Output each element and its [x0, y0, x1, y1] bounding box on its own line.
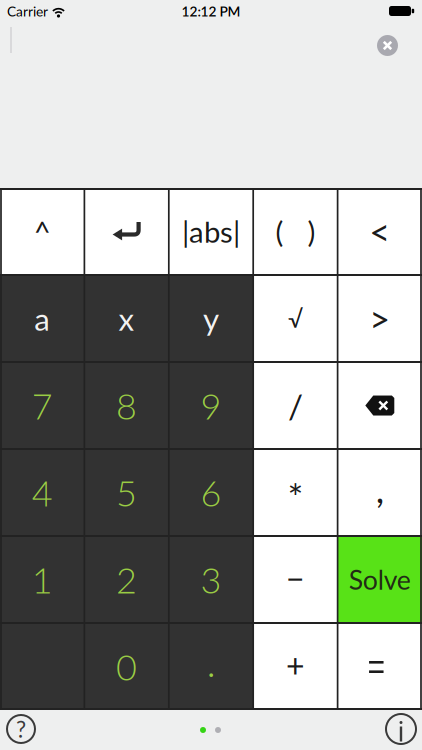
button[interactable]: /: [253, 362, 338, 449]
staticText: 7: [32, 384, 53, 427]
staticText: >: [369, 297, 390, 340]
staticText: ?: [16, 715, 26, 743]
staticText: 1: [32, 558, 53, 601]
button[interactable]: 2: [84, 536, 169, 623]
button[interactable]: y: [169, 275, 253, 362]
button[interactable]: <: [338, 188, 422, 275]
staticText: 12:12 PM: [181, 3, 240, 19]
staticText: √: [288, 304, 303, 333]
staticText: Carrier: [7, 3, 48, 19]
button[interactable]: x: [84, 275, 169, 362]
button[interactable]: √: [253, 275, 338, 362]
button[interactable]: [84, 188, 169, 275]
button[interactable]: 1: [0, 536, 84, 623]
button[interactable]: ^: [0, 188, 84, 275]
button[interactable]: (: [253, 188, 338, 275]
staticText: 8: [116, 384, 137, 427]
staticText: 9: [200, 384, 221, 427]
staticText: |abs|: [182, 214, 240, 249]
staticText: 3: [200, 558, 221, 601]
staticText: Solve: [349, 563, 411, 595]
button[interactable]: .: [169, 623, 253, 710]
staticText: 2: [116, 558, 137, 601]
staticText: ,: [376, 466, 384, 511]
button[interactable]: [377, 35, 398, 56]
button[interactable]: [338, 623, 422, 710]
staticText: *: [287, 474, 303, 519]
staticText: <: [369, 210, 390, 253]
staticText: 5: [116, 471, 137, 514]
staticText: .: [206, 637, 215, 685]
button[interactable]: *: [253, 449, 338, 536]
button[interactable]: ,: [338, 449, 422, 536]
staticText: −: [286, 559, 305, 597]
staticText: 0: [116, 645, 137, 688]
button[interactable]: 9: [169, 362, 253, 449]
button[interactable]: +: [253, 623, 338, 710]
staticText: ): [307, 214, 315, 249]
button[interactable]: |abs|: [169, 188, 253, 275]
button[interactable]: [386, 714, 416, 744]
button[interactable]: 7: [0, 362, 84, 449]
staticText: x: [119, 300, 135, 337]
button[interactable]: >: [338, 275, 422, 362]
staticText: +: [286, 646, 305, 684]
staticText: 4: [32, 471, 53, 514]
button[interactable]: 0: [84, 623, 169, 710]
button[interactable]: a: [0, 275, 84, 362]
staticText: (: [275, 214, 283, 249]
button[interactable]: 6: [169, 449, 253, 536]
staticText: /: [288, 385, 303, 425]
staticText: a: [34, 300, 50, 337]
button[interactable]: ?: [7, 715, 35, 743]
staticText: y: [203, 300, 219, 337]
button[interactable]: Solve: [338, 536, 422, 623]
button[interactable]: 5: [84, 449, 169, 536]
button[interactable]: 4: [0, 449, 84, 536]
staticText: 6: [200, 471, 221, 514]
button[interactable]: [200, 727, 221, 733]
button[interactable]: −: [253, 536, 338, 623]
button[interactable]: [0, 623, 84, 710]
staticText: ^: [34, 214, 51, 249]
button[interactable]: 8: [84, 362, 169, 449]
button[interactable]: 3: [169, 536, 253, 623]
button[interactable]: [338, 362, 422, 449]
